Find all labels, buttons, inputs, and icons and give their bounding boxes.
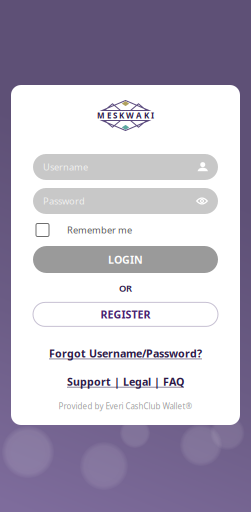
staticText: OR: [119, 282, 132, 294]
staticText: Password: [43, 195, 85, 207]
button[interactable]: Forgot Username/Password?: [49, 346, 202, 361]
staticText: Username: [43, 161, 88, 173]
staticText: Forgot Username/Password?: [49, 346, 202, 361]
button[interactable]: Remember me: [36, 223, 215, 237]
button[interactable]: REGISTER: [33, 302, 218, 326]
staticText: Remember me: [67, 224, 132, 236]
staticText: M E S K W A K I: [97, 110, 154, 121]
staticText: Support | Legal | FAQ: [67, 375, 184, 389]
staticText: REGISTER: [100, 307, 150, 321]
button[interactable]: Password: [33, 188, 218, 214]
button[interactable]: Username: [33, 154, 218, 180]
button[interactable]: LOGIN: [33, 246, 218, 273]
staticText: LOGIN: [108, 252, 143, 267]
staticText: Provided by Everi CashClub Wallet®: [58, 401, 192, 411]
button[interactable]: Support | Legal | FAQ: [67, 375, 184, 389]
